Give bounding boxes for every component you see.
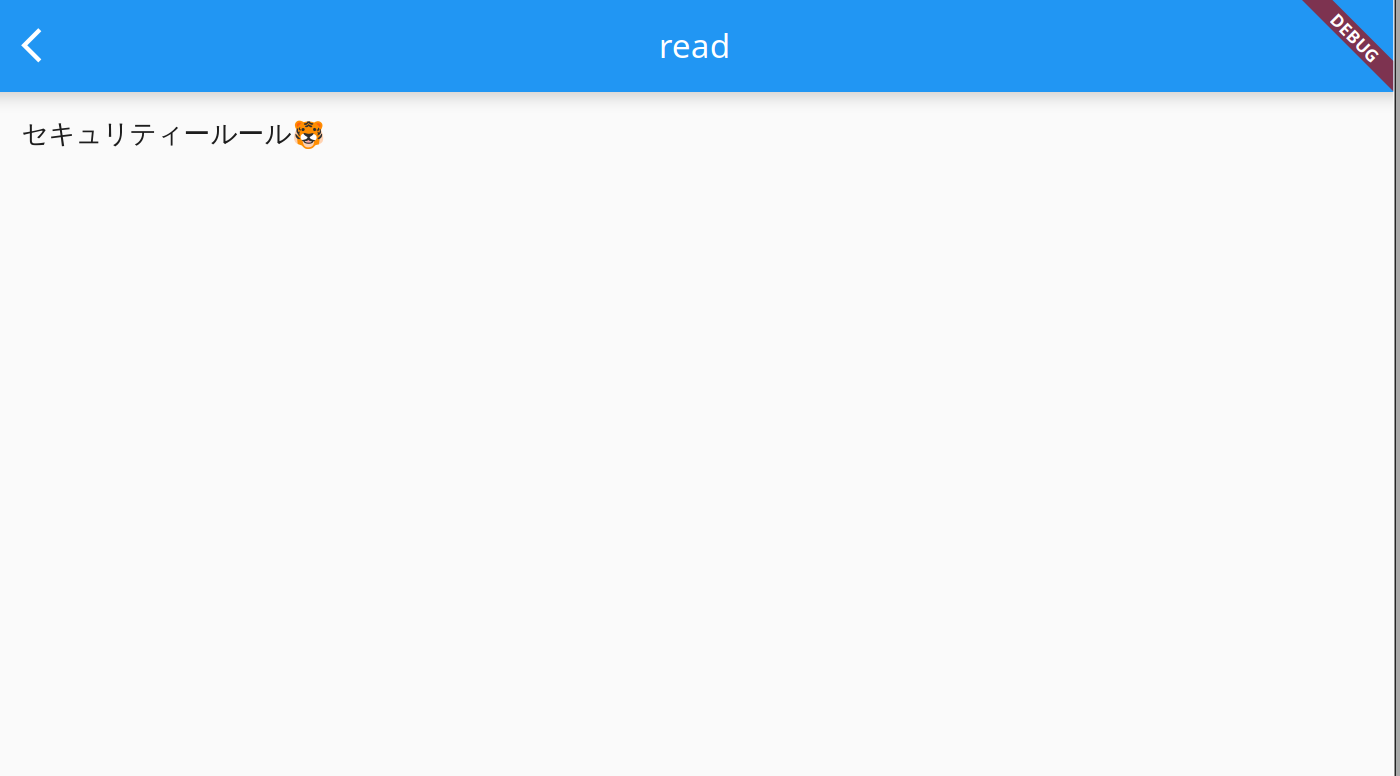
staticText: read <box>659 23 731 67</box>
staticText: セキュリティールール🐯 <box>22 117 325 150</box>
button[interactable]: Back <box>4 17 60 73</box>
staticText: DEBUG <box>1324 26 1385 49</box>
